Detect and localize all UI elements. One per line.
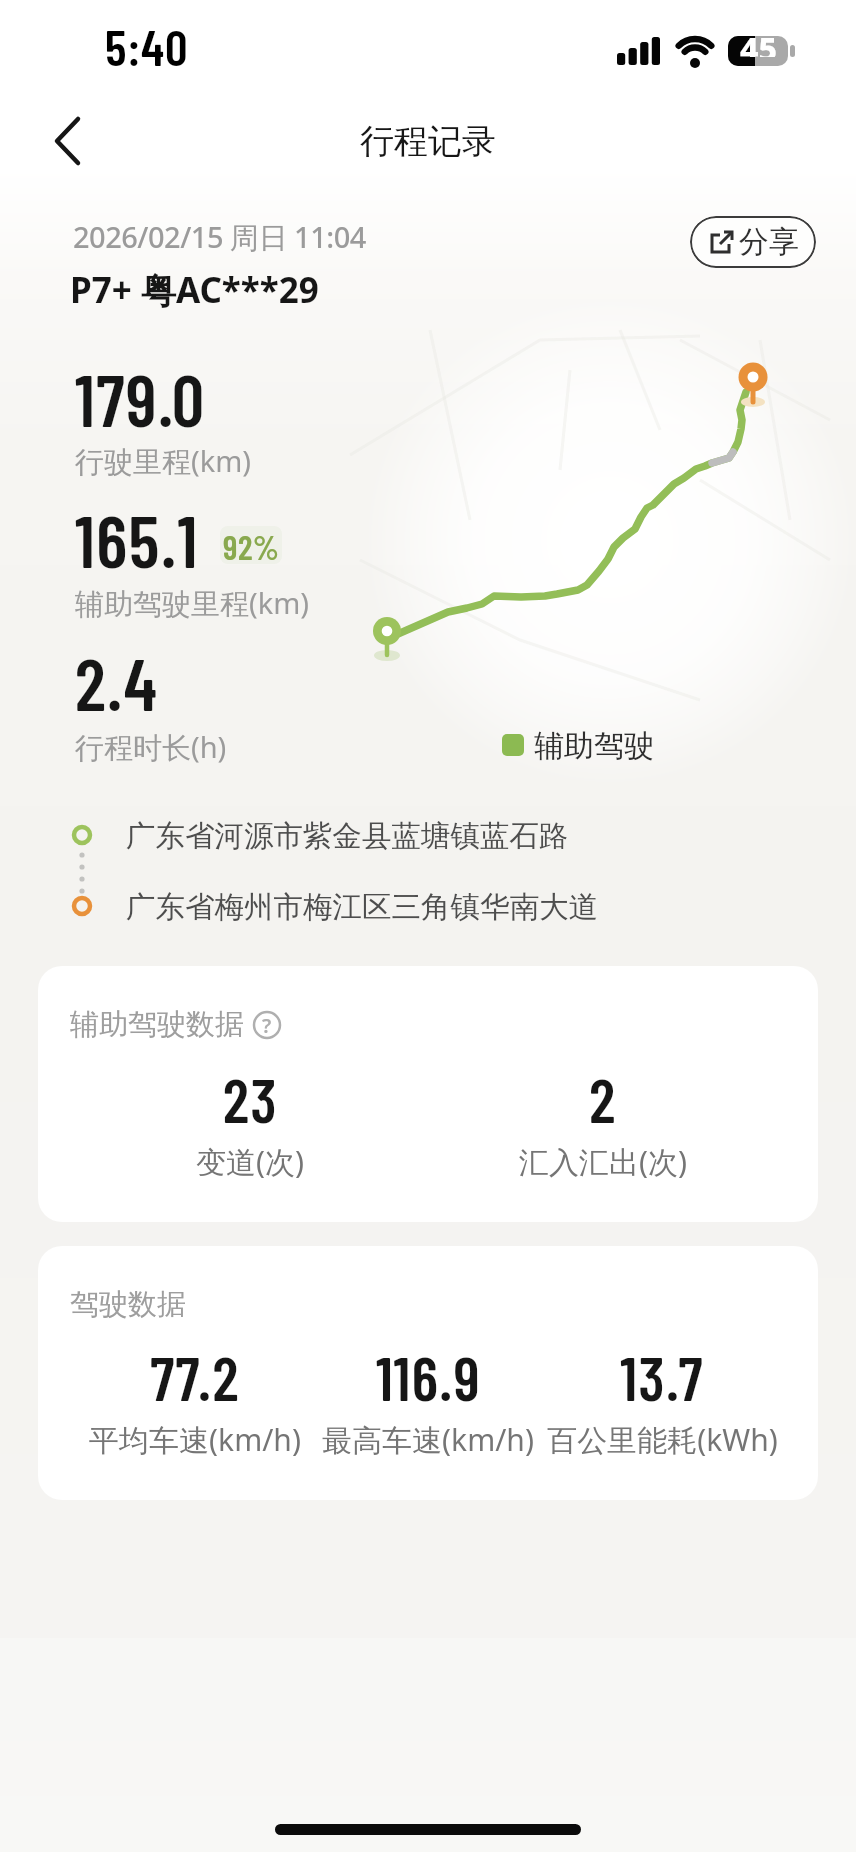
staticText: 分享 [739, 223, 799, 261]
staticText: P7+ 粤AC***29 [70, 266, 319, 314]
staticText: 行驶里程(km) [75, 441, 252, 481]
staticText: 2 [589, 1062, 617, 1135]
staticText: 百公里能耗(kWh) [547, 1419, 778, 1460]
staticText: 2.4 [75, 639, 159, 725]
staticText: 平均车速(km/h) [89, 1419, 301, 1460]
staticText: 2026/02/15 周日 11:04 [73, 217, 366, 257]
staticText: 45 [740, 27, 777, 57]
button[interactable] [52, 116, 86, 166]
staticText: 5:40 [105, 16, 189, 76]
button[interactable]: ? [252, 1010, 282, 1040]
staticText: 辅助驾驶里程(km) [75, 583, 310, 623]
staticText: 最高车速(km/h) [322, 1419, 534, 1460]
staticText: 汇入汇出(次) [519, 1141, 687, 1182]
staticText: 77.2 [150, 1340, 240, 1413]
staticText: 广东省梅州市梅江区三角镇华南大道 [126, 889, 598, 926]
staticText: 广东省河源市紫金县蓝塘镇蓝石路 [126, 818, 569, 855]
staticText: 165.1 [75, 496, 199, 582]
staticText: 116.9 [376, 1340, 481, 1413]
staticText: 驾驶数据 [70, 1286, 186, 1323]
button[interactable]: 分享 [690, 216, 816, 268]
staticText: 179.0 [75, 355, 206, 441]
staticText: 13.7 [620, 1340, 704, 1413]
staticText: 辅助驾驶 [534, 727, 654, 765]
staticText: 辅助驾驶数据 [70, 1006, 244, 1043]
staticText: 23 [223, 1062, 278, 1135]
staticText: 92% [223, 526, 280, 564]
staticText: 变道(次) [196, 1141, 304, 1182]
staticText: ? [262, 1012, 272, 1039]
staticText: 行程记录 [360, 120, 496, 163]
staticText: 行程时长(h) [75, 727, 227, 767]
